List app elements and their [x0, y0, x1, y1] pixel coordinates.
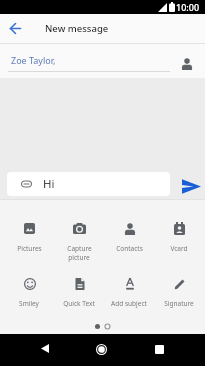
button[interactable]: Smiley — [4, 277, 54, 308]
button[interactable]: Signature — [154, 277, 204, 308]
button[interactable]: Add subject — [104, 277, 154, 308]
button[interactable]: Capture — [54, 222, 104, 262]
staticText: Smiley — [19, 299, 39, 308]
button[interactable]: Pictures — [4, 222, 54, 253]
button[interactable]: Vcard — [154, 222, 204, 253]
button[interactable]: Contacts — [104, 222, 154, 253]
button[interactable] — [179, 56, 195, 72]
button[interactable]: Hi — [7, 172, 170, 196]
staticText: Quick Text — [63, 299, 95, 308]
staticText: 10:00 — [176, 1, 200, 13]
button[interactable] — [0, 14, 30, 43]
button[interactable] — [34, 338, 55, 359]
button[interactable] — [90, 338, 112, 360]
staticText: Capture — [67, 244, 92, 253]
staticText: picture — [68, 253, 90, 262]
staticText: Vcard — [170, 244, 188, 253]
staticText: Signature — [164, 299, 194, 308]
button[interactable] — [149, 339, 169, 359]
button[interactable]: Quick Text — [54, 277, 104, 308]
staticText: Add subject — [111, 299, 147, 308]
staticText: Contacts — [116, 244, 143, 253]
staticText: New message — [45, 22, 109, 35]
staticText: Zoe Taylor, — [11, 54, 56, 66]
staticText: Pictures — [17, 244, 42, 253]
staticText: Hi — [43, 176, 55, 192]
button[interactable] — [181, 176, 202, 197]
